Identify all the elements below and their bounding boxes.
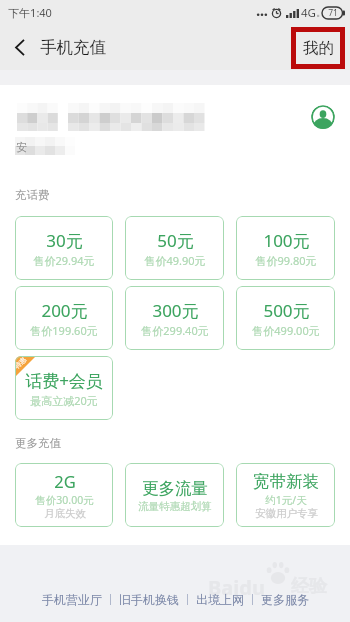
button[interactable]: 200元 (15, 286, 113, 350)
button[interactable]: 手机营业厅 (34, 583, 110, 616)
staticText: 宽带新装 (253, 471, 319, 492)
staticText: 售价29.94元 (33, 253, 95, 268)
staticText: 100元 (263, 229, 310, 252)
staticText: 4G (301, 5, 316, 21)
button[interactable]: 300元 (125, 286, 224, 350)
staticText: 旧手机换钱 (119, 592, 179, 607)
staticText: 2G (54, 470, 76, 492)
staticText: 300元 (152, 299, 199, 322)
staticText: 手机营业厅 (42, 592, 102, 607)
staticText: 经验 (291, 575, 327, 598)
staticText: 售价299.40元 (141, 323, 209, 338)
staticText: 出境上网 (196, 592, 244, 607)
staticText: 200元 (41, 299, 88, 322)
button[interactable]: 50元 (125, 216, 224, 280)
staticText: 售价49.90元 (144, 253, 206, 268)
staticText: 我的 (303, 38, 334, 58)
staticText: 售价499.00元 (252, 323, 320, 338)
staticText: 流量特惠超划算 (138, 500, 212, 513)
button[interactable]: Back (0, 25, 39, 70)
staticText: 手机充值 (40, 37, 106, 58)
button[interactable]: 我的 (291, 27, 345, 69)
button[interactable]: 更多流量 (125, 463, 224, 527)
staticText: 更多服务 (261, 592, 309, 607)
staticText: 约1元/天 (265, 493, 307, 507)
staticText: 500元 (263, 299, 310, 322)
staticText: 安徽用户专享 (255, 507, 318, 520)
staticText: 售价99.80元 (255, 253, 317, 268)
staticText: 更多充值 (15, 436, 61, 450)
button[interactable]: 2G (15, 463, 113, 527)
other: Profile (311, 105, 335, 129)
staticText: 71 (328, 7, 338, 19)
staticText: 充话费 (15, 188, 50, 202)
staticText: 最高立减20元 (30, 393, 98, 408)
staticText: 50元 (157, 229, 194, 252)
button[interactable]: 100元 (236, 216, 335, 280)
staticText: 下午1:40 (8, 5, 52, 20)
button[interactable]: 500元 (236, 286, 335, 350)
button[interactable]: 宽带新装 (236, 463, 335, 527)
staticText: 更多流量 (142, 478, 208, 499)
staticText: 话费+会员 (25, 369, 103, 392)
button[interactable]: 安 (0, 85, 350, 186)
staticText: 月底失效 (44, 507, 86, 520)
staticText: 安 (16, 140, 27, 154)
staticText: 特惠 (15, 356, 28, 370)
button[interactable]: 出境上网 (188, 583, 252, 616)
button[interactable]: 更多服务 (253, 583, 317, 616)
button[interactable]: 话费+会员 (15, 356, 113, 420)
staticText: 售价30.00元 (35, 493, 94, 507)
staticText: 30元 (46, 229, 83, 252)
button[interactable]: 旧手机换钱 (111, 583, 187, 616)
staticText: 售价199.60元 (30, 323, 98, 338)
button[interactable]: 30元 (15, 216, 113, 280)
staticText: Baidu (208, 574, 265, 601)
